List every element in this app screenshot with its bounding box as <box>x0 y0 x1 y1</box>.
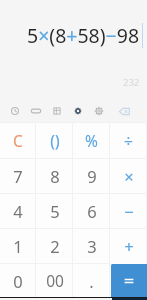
staticText: 8 <box>50 165 60 187</box>
button[interactable]: 0 <box>0 263 36 298</box>
button[interactable] <box>111 264 147 298</box>
staticText: 3 <box>87 235 97 257</box>
button[interactable]: + <box>110 228 147 263</box>
button[interactable]: Backspace <box>114 101 134 121</box>
staticText: ÷ <box>124 130 133 151</box>
button[interactable]: Settings <box>88 101 109 121</box>
button[interactable]: 7 <box>0 158 36 193</box>
staticText: − <box>124 200 134 222</box>
button[interactable]: 9 <box>73 158 110 193</box>
button[interactable]: () <box>36 122 73 158</box>
staticText: . <box>89 270 94 292</box>
button[interactable]: 8 <box>36 158 73 193</box>
staticText: C <box>13 130 23 151</box>
staticText: 5 <box>50 200 60 222</box>
staticText: 0 <box>13 270 23 292</box>
button[interactable]: 1 <box>0 228 36 263</box>
staticText: 1 <box>13 235 23 257</box>
button[interactable]: History <box>4 101 25 121</box>
staticText: 4 <box>13 200 23 222</box>
staticText: + <box>124 235 134 257</box>
button[interactable]: . <box>73 263 110 298</box>
button[interactable]: Unit converter <box>46 101 67 121</box>
button[interactable]: 4 <box>0 193 36 228</box>
staticText: 2 <box>50 235 60 257</box>
staticText: 00 <box>46 270 64 291</box>
button[interactable]: − <box>110 193 147 228</box>
button[interactable]: 5 <box>36 193 73 228</box>
button[interactable]: 00 <box>36 263 73 298</box>
button[interactable]: C <box>0 122 36 158</box>
button[interactable]: 6 <box>73 193 110 228</box>
button[interactable]: Scientific mode <box>67 101 88 121</box>
button[interactable]: × <box>110 158 147 193</box>
staticText: 6 <box>87 200 97 222</box>
staticText: 7 <box>13 165 23 187</box>
button[interactable]: 3 <box>73 228 110 263</box>
button[interactable]: ÷ <box>110 122 147 158</box>
button[interactable]: 2 <box>36 228 73 263</box>
button[interactable]: % <box>73 122 110 158</box>
button[interactable]: Collapse keypad <box>25 101 46 121</box>
staticText: () <box>50 130 60 151</box>
staticText: 9 <box>87 165 97 187</box>
staticText: % <box>85 130 98 151</box>
staticText: × <box>124 165 134 187</box>
staticText: 232 <box>123 76 140 89</box>
staticText: 5×(8+58)−98 <box>27 22 140 49</box>
